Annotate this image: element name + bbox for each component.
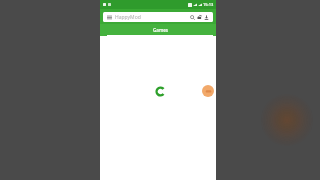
button[interactable]: Search (189, 14, 196, 21)
button[interactable]: Menu (106, 14, 112, 20)
button[interactable]: Downloads (203, 14, 210, 21)
staticText: Games (153, 27, 168, 33)
button[interactable]: Assistant (202, 85, 214, 97)
button[interactable]: Menu (103, 12, 213, 22)
button[interactable]: Cart (196, 14, 203, 21)
staticText: 15:13 (203, 2, 214, 7)
staticText: HappyMod (115, 14, 189, 21)
button[interactable]: Games (104, 24, 216, 36)
